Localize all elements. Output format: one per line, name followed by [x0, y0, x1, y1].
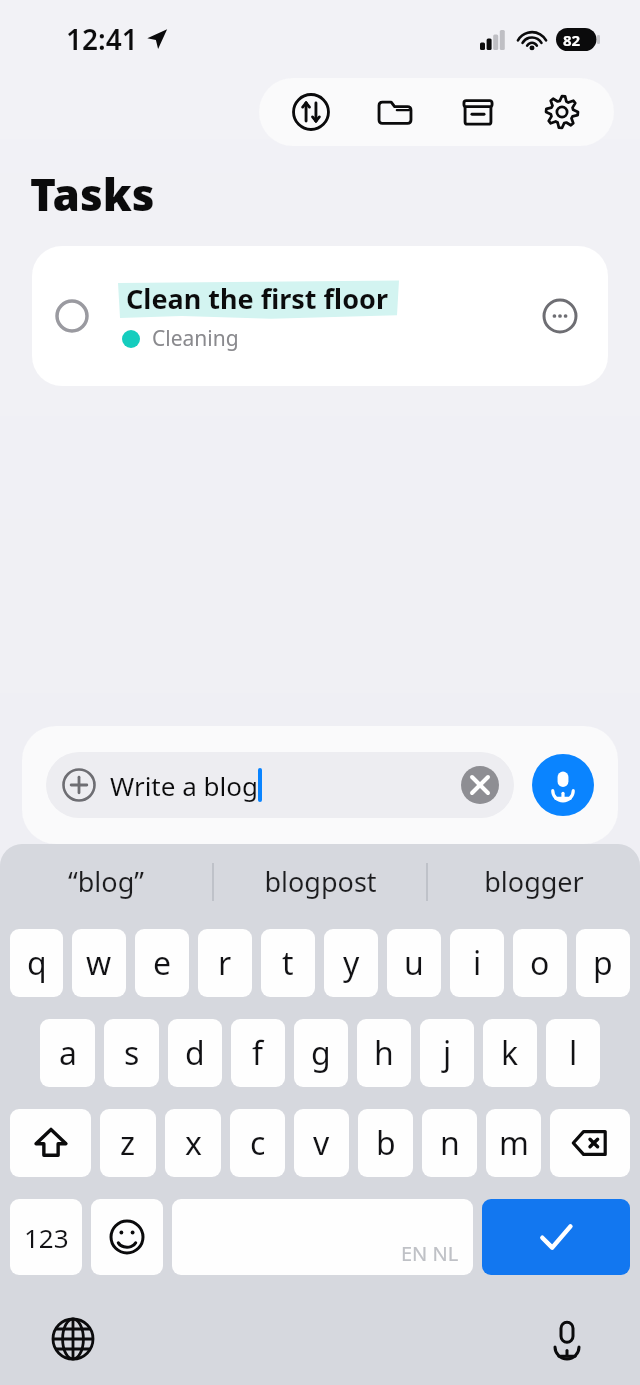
staticText: l — [569, 1031, 578, 1075]
staticText: “blog” — [68, 863, 144, 900]
staticText: q — [27, 941, 47, 985]
button[interactable]: g — [294, 1019, 348, 1087]
staticText: m — [499, 1121, 529, 1165]
button[interactable]: Archive — [447, 81, 509, 143]
button[interactable]: h — [357, 1019, 411, 1087]
staticText: Cleaning — [152, 324, 239, 353]
staticText: i — [473, 941, 482, 985]
button[interactable]: Write a blog — [46, 752, 514, 818]
button[interactable]: y — [324, 929, 378, 997]
staticText: h — [374, 1031, 394, 1075]
staticText: EN NL — [401, 1240, 459, 1267]
staticText: u — [404, 941, 424, 985]
button[interactable]: Done — [482, 1199, 630, 1275]
staticText: p — [593, 941, 613, 985]
button[interactable]: p — [576, 929, 630, 997]
staticText: k — [501, 1031, 519, 1075]
staticText: Write a blog — [110, 768, 258, 803]
staticText: z — [120, 1121, 136, 1165]
button[interactable]: 123 — [10, 1199, 82, 1275]
button[interactable]: u — [387, 929, 441, 997]
staticText: r — [218, 941, 232, 985]
button[interactable]: Clear text — [460, 765, 500, 805]
staticText: c — [250, 1121, 266, 1165]
staticText: 82 — [563, 30, 581, 50]
button[interactable]: d — [168, 1019, 222, 1087]
staticText: s — [124, 1031, 140, 1075]
button[interactable]: Switch keyboard language — [46, 1312, 100, 1366]
button[interactable]: “blog” — [0, 844, 212, 919]
staticText: y — [343, 941, 360, 985]
button[interactable]: a — [40, 1019, 95, 1087]
button[interactable]: b — [358, 1109, 413, 1177]
button[interactable]: k — [483, 1019, 537, 1087]
button[interactable]: Space — [172, 1199, 473, 1275]
staticText: e — [153, 941, 172, 985]
staticText: x — [185, 1121, 202, 1165]
staticText: 123 — [24, 1220, 69, 1255]
button[interactable]: Settings — [531, 81, 593, 143]
staticText: b — [376, 1121, 396, 1165]
button[interactable]: Clean the first floor — [32, 246, 608, 386]
staticText: w — [86, 941, 112, 985]
staticText: f — [252, 1031, 264, 1075]
button[interactable]: Emoji — [91, 1199, 163, 1275]
button[interactable]: Voice input — [532, 754, 594, 816]
staticText: blogpost — [264, 863, 377, 900]
button[interactable]: t — [261, 929, 315, 997]
button[interactable]: blogger — [428, 844, 640, 919]
button[interactable]: e — [135, 929, 189, 997]
button[interactable]: Folders — [364, 81, 426, 143]
button[interactable]: s — [104, 1019, 159, 1087]
button[interactable]: w — [72, 929, 126, 997]
button[interactable]: o — [513, 929, 567, 997]
staticText: Clean the first floor — [126, 280, 389, 317]
button[interactable]: blogpost — [214, 844, 426, 919]
button[interactable]: Dictation — [540, 1312, 594, 1366]
button[interactable]: x — [165, 1109, 221, 1177]
staticText: d — [185, 1031, 205, 1075]
staticText: Tasks — [30, 164, 155, 224]
staticText: o — [530, 941, 550, 985]
button[interactable]: c — [230, 1109, 285, 1177]
button[interactable]: j — [420, 1019, 474, 1087]
button[interactable]: Sort — [280, 81, 342, 143]
staticText: t — [282, 941, 294, 985]
staticText: blogger — [484, 863, 584, 900]
staticText: j — [443, 1031, 452, 1075]
staticText: g — [311, 1031, 331, 1075]
button[interactable]: f — [231, 1019, 285, 1087]
button[interactable]: Shift — [10, 1109, 91, 1177]
button[interactable]: n — [422, 1109, 477, 1177]
button[interactable]: More options — [538, 294, 582, 338]
button[interactable]: Backspace — [550, 1109, 630, 1177]
staticText: 12:41 — [66, 20, 138, 58]
button[interactable]: m — [486, 1109, 541, 1177]
button[interactable]: l — [546, 1019, 600, 1087]
button[interactable]: z — [100, 1109, 156, 1177]
staticText: a — [59, 1031, 77, 1075]
staticText: n — [440, 1121, 460, 1165]
button[interactable]: i — [450, 929, 504, 997]
button[interactable]: v — [294, 1109, 349, 1177]
button[interactable]: q — [10, 929, 63, 997]
staticText: v — [313, 1121, 330, 1165]
button[interactable]: r — [198, 929, 252, 997]
